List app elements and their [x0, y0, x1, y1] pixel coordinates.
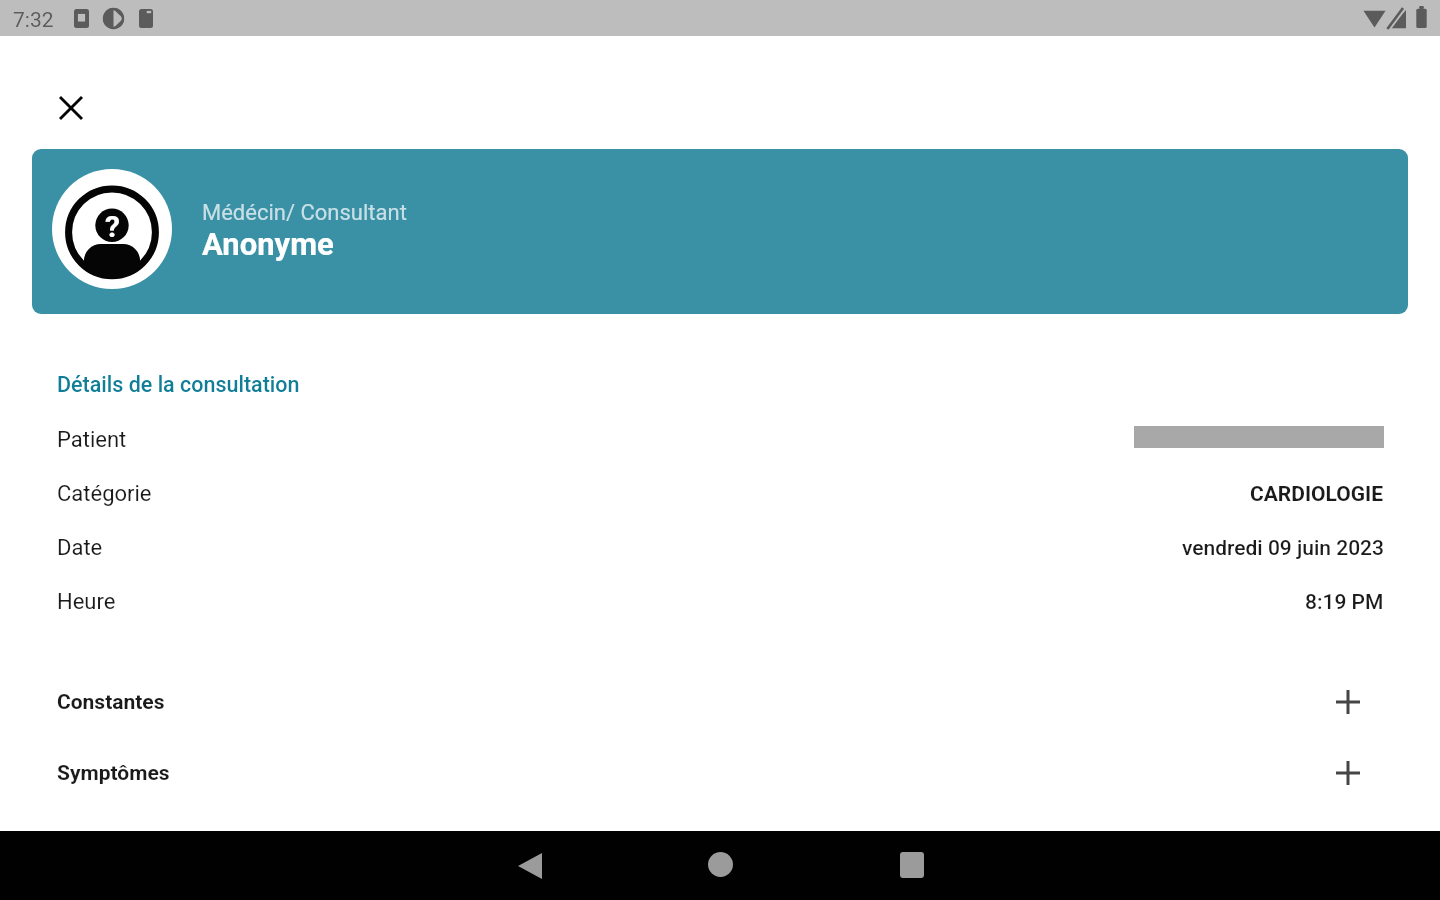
staticText: Symptômes [57, 761, 170, 786]
button[interactable]: Ajouter Constantes [1331, 685, 1365, 719]
button[interactable]: ? [32, 149, 1408, 314]
staticText: Constantes [57, 690, 165, 715]
button[interactable]: Date [57, 533, 1384, 563]
button[interactable]: Patient [57, 425, 1384, 455]
button[interactable]: Catégorie [57, 479, 1384, 509]
staticText: Heure [57, 589, 116, 615]
staticText: vendredi 09 juin 2023 [1182, 536, 1384, 561]
button[interactable]: Home [684, 830, 756, 899]
button[interactable]: Close [47, 84, 95, 132]
staticText: 8:19 PM [1305, 590, 1384, 615]
button[interactable]: Recents [876, 830, 948, 899]
staticText: Anonyme [202, 226, 334, 262]
staticText: Date [57, 535, 103, 561]
staticText: 7:32 [13, 8, 54, 33]
staticText: Médécin/ Consultant [202, 200, 407, 226]
button[interactable]: Heure [57, 587, 1384, 617]
staticText: Patient [57, 427, 127, 453]
staticText: CARDIOLOGIE [1250, 482, 1384, 507]
button[interactable]: Ajouter Symptômes [1331, 756, 1365, 790]
button[interactable]: Constantes [57, 685, 1384, 719]
staticText: Catégorie [57, 481, 152, 507]
staticText: ? [105, 209, 120, 237]
button[interactable]: Back [494, 831, 566, 900]
staticText: Détails de la consultation [57, 372, 300, 397]
button[interactable]: Symptômes [57, 756, 1384, 790]
